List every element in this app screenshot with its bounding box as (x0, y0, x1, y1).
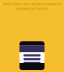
staticText: Lorem ipsum dolor sit amet consectetur (3, 2, 61, 6)
staticText: adipiscing elit sed do (16, 7, 48, 10)
